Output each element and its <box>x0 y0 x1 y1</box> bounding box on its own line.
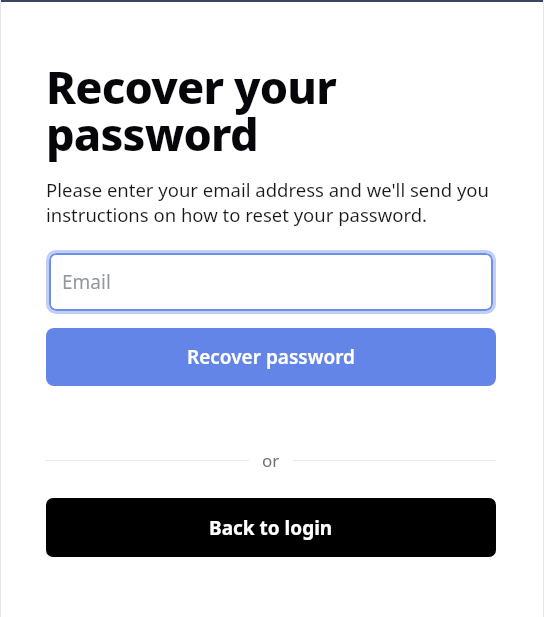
button[interactable]: Email <box>49 253 493 311</box>
staticText: or <box>262 449 280 472</box>
staticText: Back to login <box>209 515 333 541</box>
staticText: Recover your password <box>46 56 336 164</box>
staticText: Please enter your email address and we'l… <box>46 177 496 227</box>
staticText: Email <box>62 269 111 295</box>
button[interactable]: Back to login <box>46 498 496 557</box>
staticText: Recover password <box>187 344 355 370</box>
button[interactable]: Recover password <box>46 328 496 386</box>
